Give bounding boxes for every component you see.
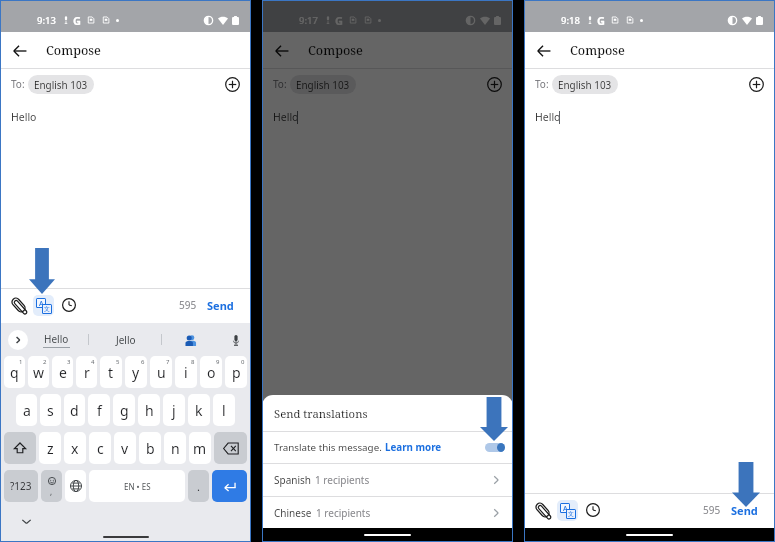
button[interactable]: Back bbox=[532, 39, 556, 63]
staticText: Send bbox=[731, 503, 758, 518]
button[interactable]: Schedule send bbox=[57, 293, 81, 317]
button[interactable]: h bbox=[138, 394, 160, 426]
button[interactable]: Jello bbox=[108, 323, 143, 356]
staticText: x bbox=[71, 439, 79, 458]
staticText: s bbox=[47, 401, 54, 420]
staticText: c bbox=[97, 439, 104, 458]
staticText: h bbox=[145, 401, 154, 420]
staticText: Learn more bbox=[385, 441, 442, 454]
button[interactable]: 9 bbox=[200, 356, 222, 388]
button[interactable]: English 103 bbox=[552, 75, 618, 94]
staticText: p bbox=[232, 363, 241, 382]
staticText: g bbox=[120, 401, 129, 420]
button[interactable]: Add recipient bbox=[483, 73, 505, 95]
button[interactable]: Hello bbox=[37, 323, 76, 356]
button[interactable]: Hide keyboard bbox=[17, 512, 35, 530]
button[interactable]: 6 bbox=[125, 356, 147, 388]
button[interactable]: v bbox=[114, 432, 136, 464]
staticText: A bbox=[563, 504, 568, 512]
staticText: Compose bbox=[570, 42, 625, 59]
button[interactable]: Add recipient bbox=[745, 73, 767, 95]
staticText: G bbox=[597, 13, 605, 28]
staticText: Hello bbox=[44, 332, 69, 346]
button[interactable]: m bbox=[189, 432, 211, 464]
staticText: 文 bbox=[568, 510, 574, 518]
button[interactable]: . bbox=[188, 470, 209, 502]
button[interactable]: 1 bbox=[4, 356, 25, 388]
staticText: 9 bbox=[216, 358, 220, 366]
button[interactable]: Shift bbox=[4, 432, 36, 464]
button[interactable]: Add recipient bbox=[221, 73, 243, 95]
button[interactable]: Back bbox=[8, 39, 32, 63]
staticText: To: bbox=[535, 77, 549, 91]
button[interactable]: z bbox=[39, 432, 61, 464]
staticText: 文 bbox=[44, 305, 50, 313]
staticText: n bbox=[171, 439, 180, 458]
button[interactable]: 5 bbox=[100, 356, 122, 388]
button[interactable]: Chinese bbox=[262, 497, 513, 528]
button[interactable]: 7 bbox=[150, 356, 172, 388]
button[interactable]: Stickers bbox=[180, 329, 202, 351]
button[interactable]: f bbox=[88, 394, 110, 426]
button[interactable]: Translate this message. bbox=[262, 432, 513, 463]
button[interactable]: Voice input bbox=[225, 329, 247, 351]
staticText: Compose bbox=[308, 42, 363, 59]
staticText: 0 bbox=[241, 358, 245, 366]
staticText: u bbox=[157, 363, 166, 382]
button[interactable]: b bbox=[139, 432, 161, 464]
staticText: z bbox=[47, 439, 54, 458]
button[interactable]: Schedule send bbox=[581, 498, 605, 522]
button[interactable]: d bbox=[64, 394, 85, 426]
button[interactable]: x bbox=[64, 432, 86, 464]
button[interactable]: ?123 bbox=[4, 470, 38, 502]
button[interactable]: Emoji bbox=[41, 470, 62, 502]
staticText: 6 bbox=[141, 358, 145, 366]
button[interactable]: English 103 bbox=[290, 75, 356, 94]
staticText: 4 bbox=[91, 358, 95, 366]
staticText: English 103 bbox=[34, 78, 88, 91]
button[interactable]: Send bbox=[203, 293, 238, 318]
button[interactable]: Back bbox=[270, 39, 294, 63]
staticText: To: bbox=[273, 77, 287, 91]
button[interactable]: English 103 bbox=[28, 75, 94, 94]
staticText: 3 bbox=[67, 358, 71, 366]
staticText: 1 recipients bbox=[315, 473, 370, 487]
button[interactable]: Attach file bbox=[530, 498, 554, 522]
staticText: w bbox=[33, 363, 45, 382]
staticText: v bbox=[121, 439, 129, 458]
staticText: A bbox=[39, 299, 44, 307]
staticText: 2 bbox=[43, 358, 47, 366]
button[interactable]: n bbox=[164, 432, 186, 464]
staticText: 5 bbox=[116, 358, 120, 366]
staticText: 595 bbox=[703, 503, 721, 517]
staticText: j bbox=[172, 401, 176, 420]
staticText: Hello bbox=[273, 110, 299, 124]
staticText: 9:13 bbox=[37, 14, 56, 27]
button[interactable]: g bbox=[113, 394, 135, 426]
button[interactable]: Spanish bbox=[262, 464, 513, 496]
button[interactable]: l bbox=[213, 394, 235, 426]
button[interactable]: j bbox=[163, 394, 185, 426]
button[interactable]: s bbox=[40, 394, 61, 426]
button[interactable]: Enter bbox=[212, 470, 247, 502]
button[interactable]: 3 bbox=[52, 356, 73, 388]
button[interactable]: 0 bbox=[225, 356, 247, 388]
button[interactable]: Change language bbox=[65, 470, 86, 502]
button[interactable]: Translate bbox=[33, 295, 54, 316]
staticText: G bbox=[73, 13, 81, 28]
button[interactable]: 2 bbox=[28, 356, 49, 388]
button[interactable]: c bbox=[89, 432, 111, 464]
button[interactable]: 4 bbox=[76, 356, 97, 388]
button[interactable]: Attach file bbox=[6, 293, 30, 317]
button[interactable]: Backspace bbox=[214, 432, 247, 464]
button[interactable]: Send bbox=[727, 498, 762, 523]
button[interactable]: More suggestions bbox=[8, 330, 28, 350]
button[interactable]: 8 bbox=[175, 356, 197, 388]
button[interactable]: EN • ES bbox=[89, 470, 185, 502]
staticText: y bbox=[132, 363, 140, 382]
button[interactable]: k bbox=[188, 394, 210, 426]
staticText: Jello bbox=[116, 333, 136, 347]
button[interactable]: Translate bbox=[557, 500, 578, 521]
staticText: l bbox=[222, 401, 226, 420]
button[interactable]: a bbox=[16, 394, 37, 426]
